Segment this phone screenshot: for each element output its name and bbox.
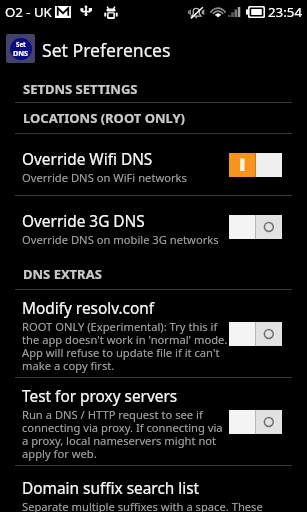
staticText: DNS EXTRAS [23, 265, 102, 283]
staticText: 23:54 [268, 3, 302, 21]
staticText: Domain suffix search list [22, 478, 200, 499]
staticText: LOCATIONS (ROOT ONLY) [23, 109, 185, 127]
staticText: Test for proxy servers [22, 386, 178, 407]
button[interactable]: Modify resolv.conf [0, 290, 307, 378]
button[interactable]: App icon [6, 34, 35, 63]
staticText: Run a DNS / HTTP request to see if conne… [22, 407, 228, 462]
button[interactable]: Override Wifi DNS [0, 134, 307, 196]
staticText: Modify resolv.conf [22, 298, 155, 319]
staticText: Set [16, 40, 26, 48]
staticText: Override Wifi DNS [22, 149, 153, 170]
staticText: SETDNS SETTINGS [23, 80, 138, 98]
staticText: Override DNS on mobile 3G networks [22, 232, 219, 247]
staticText: Override DNS on WiFi networks [22, 170, 187, 185]
staticText: Separate multiple suffixes with a space.… [22, 499, 268, 512]
button[interactable]: Off [229, 322, 282, 346]
button[interactable]: Off [229, 215, 282, 239]
button[interactable]: Test for proxy servers [0, 378, 307, 466]
staticText: Set Preferences [42, 38, 171, 62]
staticText: DNS [13, 48, 29, 58]
button[interactable]: Override 3G DNS [0, 196, 307, 258]
staticText: ROOT ONLY (Experimental): Try this if th… [22, 319, 228, 374]
staticText: Override 3G DNS [22, 211, 145, 232]
staticText: O2 - UK [5, 3, 52, 21]
button[interactable]: Off [229, 410, 282, 434]
button[interactable]: On [229, 153, 282, 177]
button[interactable]: Domain suffix search list [0, 466, 307, 512]
